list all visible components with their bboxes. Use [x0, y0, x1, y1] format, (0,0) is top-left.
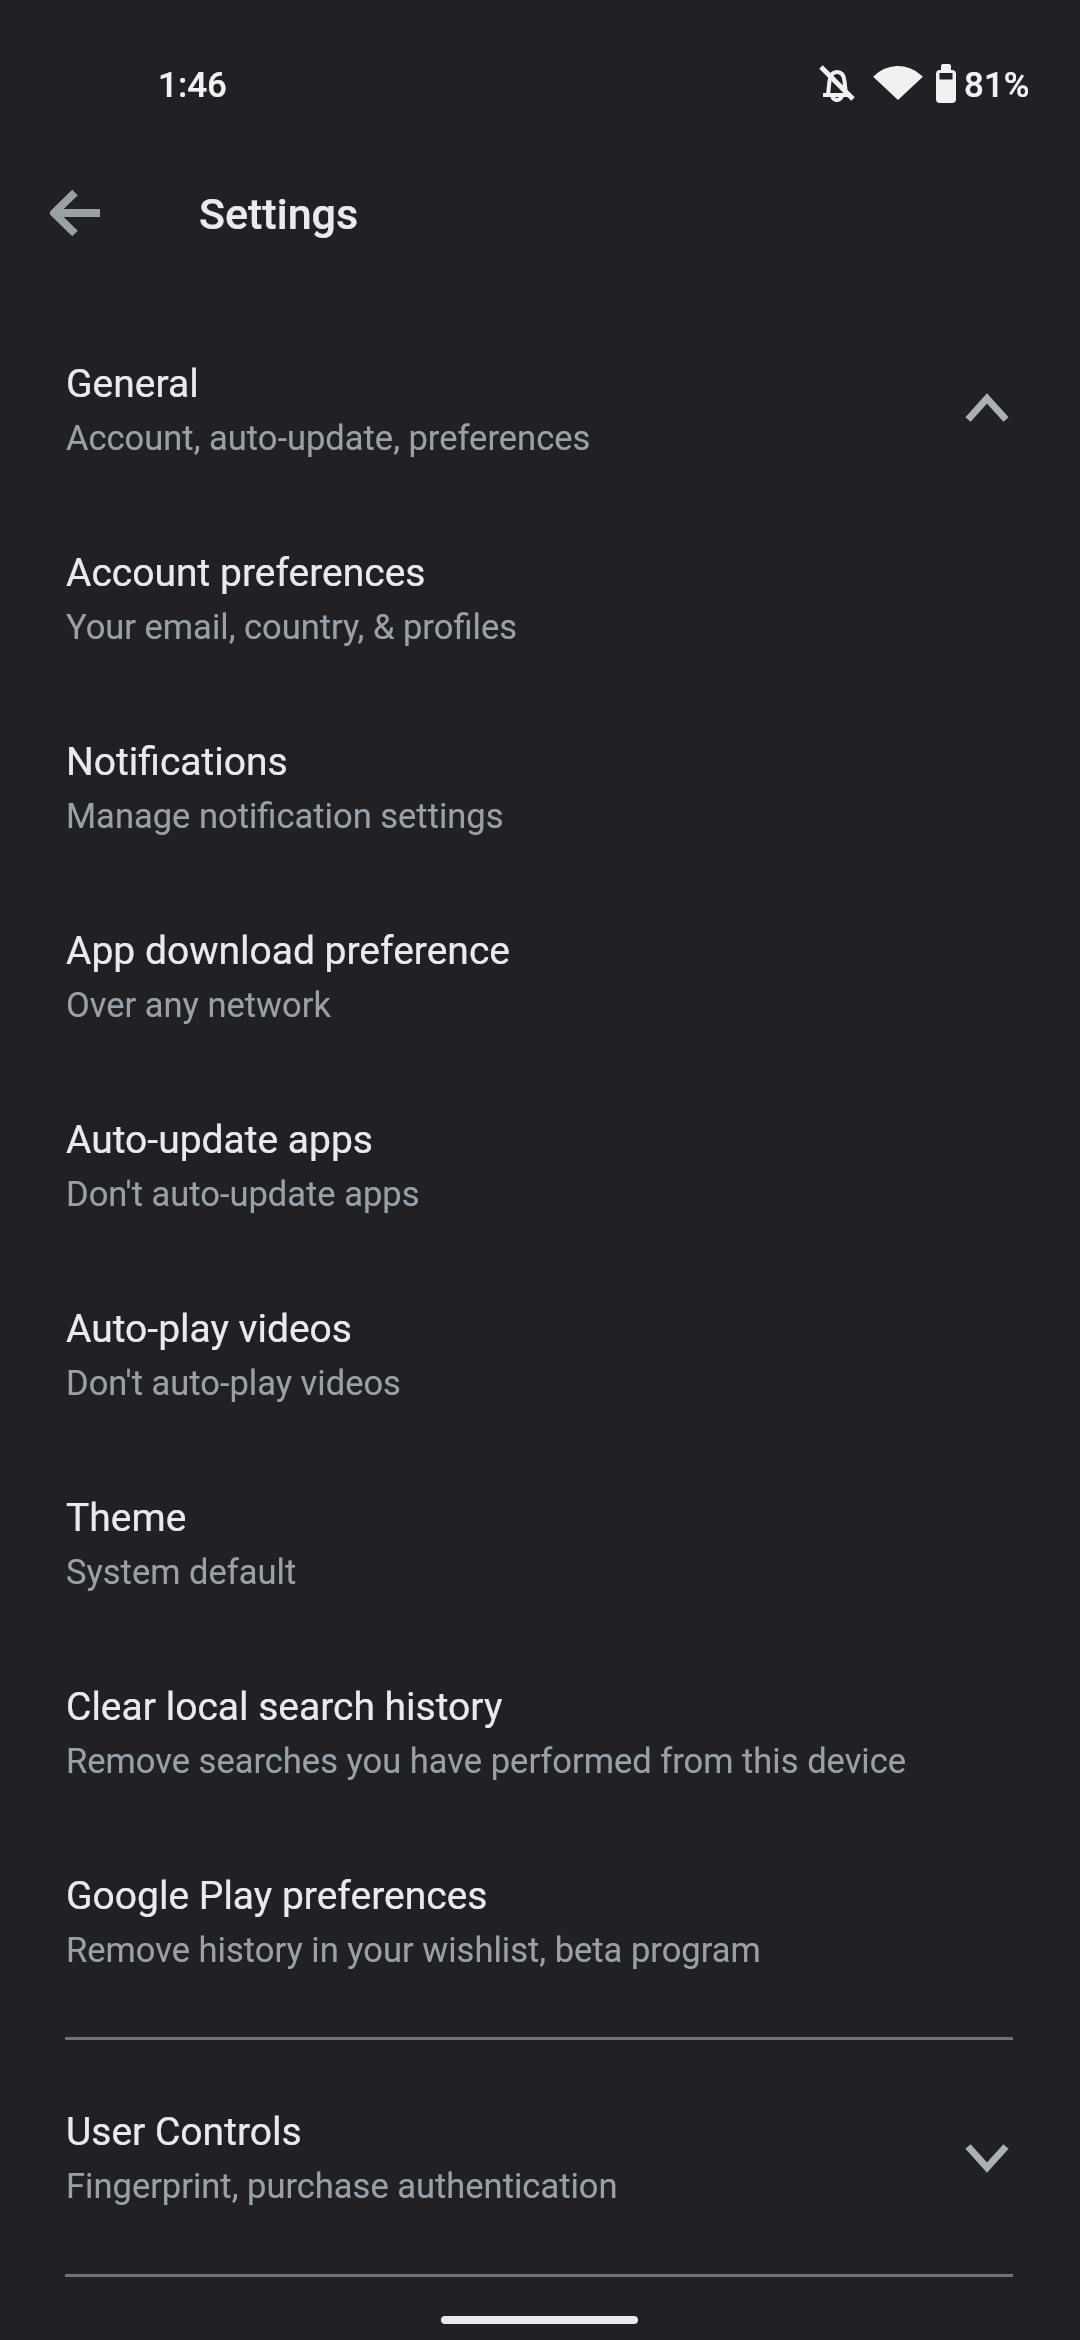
button[interactable]: Theme — [0, 1452, 1080, 1641]
staticText: Theme — [66, 1495, 187, 1541]
button[interactable] — [30, 166, 124, 260]
staticText: System default — [66, 1552, 297, 1592]
staticText: Manage notification settings — [66, 796, 504, 836]
button[interactable]: App download preference — [0, 885, 1080, 1074]
staticText: Settings — [199, 189, 359, 239]
button[interactable]: Account preferences — [0, 507, 1080, 696]
button[interactable]: Auto-update apps — [0, 1074, 1080, 1263]
staticText: Remove searches you have performed from … — [66, 1741, 907, 1781]
button[interactable]: Google Play preferences — [0, 1830, 1080, 2019]
staticText: Auto-update apps — [66, 1117, 373, 1163]
button[interactable]: User Controls — [0, 2066, 1080, 2255]
staticText: Clear local search history — [66, 1684, 503, 1730]
staticText: Don't auto-update apps — [66, 1174, 420, 1214]
button[interactable]: Clear local search history — [0, 1641, 1080, 1830]
staticText: Auto-play videos — [66, 1306, 352, 1352]
button[interactable]: Auto-play videos — [0, 1263, 1080, 1452]
staticText: Over any network — [66, 985, 331, 1025]
staticText: Account preferences — [66, 550, 426, 596]
staticText: Notifications — [66, 739, 288, 785]
staticText: Fingerprint, purchase authentication — [66, 2166, 618, 2206]
staticText: 1:46 — [158, 65, 227, 106]
staticText: Google Play preferences — [66, 1873, 488, 1919]
staticText: Account, auto-update, preferences — [66, 418, 591, 458]
staticText: Remove history in your wishlist, beta pr… — [66, 1930, 761, 1970]
button[interactable]: Notifications — [0, 696, 1080, 885]
button[interactable]: General — [0, 318, 1080, 507]
staticText: General — [66, 361, 199, 407]
staticText: Your email, country, & profiles — [66, 607, 517, 647]
staticText: Don't auto-play videos — [66, 1363, 401, 1403]
staticText: User Controls — [66, 2109, 302, 2155]
staticText: App download preference — [66, 928, 510, 974]
staticText: 81% — [964, 65, 1030, 106]
